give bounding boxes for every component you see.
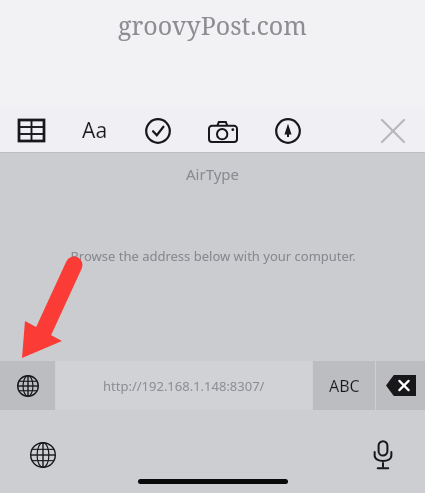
- button[interactable]: Table: [0, 108, 63, 153]
- staticText: Aa: [82, 116, 108, 145]
- button[interactable]: Draw: [255, 108, 320, 153]
- button[interactable]: Dictation: [360, 432, 406, 478]
- button[interactable]: ABC: [313, 361, 375, 410]
- staticText: AirType: [186, 164, 240, 184]
- button[interactable]: Camera: [190, 108, 255, 153]
- button[interactable]: Change keyboard: [0, 361, 55, 410]
- staticText: Browse the address below with your compu…: [70, 247, 356, 265]
- staticText: groovyPost.com: [118, 8, 307, 42]
- button[interactable]: Change keyboard: [20, 432, 66, 478]
- button[interactable]: Text format: [63, 108, 126, 153]
- staticText: http://192.168.1.148:8307/: [103, 377, 265, 395]
- button[interactable]: Close: [361, 108, 425, 153]
- button[interactable]: Checklist: [126, 108, 190, 153]
- button[interactable]: Backspace: [376, 361, 425, 410]
- staticText: ABC: [329, 375, 360, 397]
- button[interactable]: http://192.168.1.148:8307/: [56, 361, 312, 410]
